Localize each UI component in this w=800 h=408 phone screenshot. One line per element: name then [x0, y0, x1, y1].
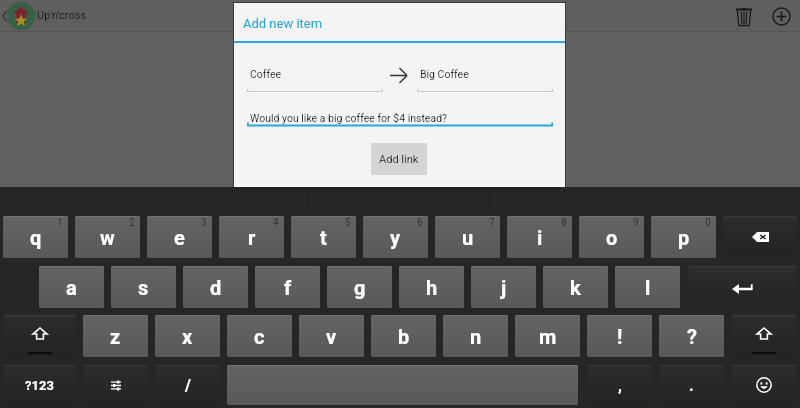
button[interactable]: j	[471, 266, 536, 308]
button[interactable]: Emoji	[731, 365, 797, 405]
button[interactable]: t	[291, 216, 356, 258]
staticText: 9	[633, 217, 639, 229]
staticText: ,	[618, 376, 622, 395]
staticText: 8	[561, 217, 567, 229]
button[interactable]: Space	[227, 365, 578, 405]
staticText: Big Coffee	[420, 68, 469, 80]
button[interactable]: Backspace	[723, 216, 797, 258]
other: Navigate up	[2, 11, 7, 21]
staticText: y	[390, 226, 401, 249]
staticText: u	[462, 226, 474, 249]
button[interactable]: i	[507, 216, 572, 258]
button[interactable]: a	[39, 266, 104, 308]
button[interactable]: !	[587, 315, 652, 357]
button[interactable]: Navigate up	[0, 0, 90, 32]
button[interactable]: y	[363, 216, 428, 258]
button[interactable]: b	[371, 315, 436, 357]
staticText: 3	[201, 217, 207, 229]
button[interactable]: Shift	[3, 315, 76, 357]
staticText: v	[326, 325, 337, 348]
button[interactable]: p	[651, 216, 716, 258]
staticText: ?	[687, 325, 697, 348]
staticText: 5	[345, 217, 351, 229]
button[interactable]: n	[443, 315, 508, 357]
staticText: t	[320, 226, 327, 249]
staticText: b	[398, 325, 410, 348]
staticText: h	[426, 276, 438, 299]
staticText: s	[138, 276, 149, 299]
staticText: !	[617, 325, 623, 348]
button[interactable]: z	[83, 315, 148, 357]
button[interactable]: m	[515, 315, 580, 357]
staticText: .	[689, 376, 694, 395]
staticText: m	[539, 325, 557, 348]
button[interactable]: s	[111, 266, 176, 308]
staticText: k	[570, 276, 581, 299]
staticText: 6	[417, 217, 423, 229]
staticText: e	[174, 226, 185, 249]
staticText: f	[284, 276, 292, 299]
button[interactable]: o	[579, 216, 644, 258]
staticText: ?123	[25, 378, 54, 393]
button[interactable]: f	[255, 266, 320, 308]
staticText: o	[606, 226, 618, 249]
staticText: i	[537, 226, 543, 249]
button[interactable]: c	[227, 315, 292, 357]
button[interactable]: ?123	[3, 365, 76, 405]
staticText: Up'n'cross	[37, 9, 87, 22]
staticText: Add link	[379, 153, 419, 166]
button[interactable]: w	[75, 216, 140, 258]
button[interactable]: e	[147, 216, 212, 258]
staticText: 1	[57, 217, 63, 229]
button[interactable]: /	[155, 365, 220, 405]
staticText: 2	[129, 217, 135, 229]
staticText: 0	[705, 217, 711, 229]
button[interactable]: Delete	[723, 0, 762, 32]
button[interactable]: g	[327, 266, 392, 308]
button[interactable]: h	[399, 266, 464, 308]
button[interactable]: u	[435, 216, 500, 258]
button[interactable]: Add	[762, 0, 800, 32]
staticText: 4	[273, 217, 279, 229]
button[interactable]: .	[659, 365, 724, 405]
button[interactable]: ?	[659, 315, 724, 357]
button[interactable]: x	[155, 315, 220, 357]
staticText: n	[470, 325, 482, 348]
staticText: q	[30, 226, 42, 249]
staticText: x	[182, 325, 193, 348]
staticText: Add new item	[243, 16, 323, 31]
staticText: a	[66, 276, 77, 299]
staticText: w	[100, 226, 115, 249]
button[interactable]: q	[3, 216, 68, 258]
button[interactable]: l	[615, 266, 680, 308]
staticText: 7	[489, 217, 495, 229]
button[interactable]: ,	[587, 365, 652, 405]
button[interactable]: d	[183, 266, 248, 308]
button[interactable]: Settings	[83, 365, 148, 405]
button[interactable]: r	[219, 216, 284, 258]
button[interactable]: Enter	[688, 266, 797, 308]
staticText: z	[110, 325, 121, 348]
staticText: /	[185, 376, 191, 395]
staticText: p	[678, 226, 690, 249]
staticText: Coffee	[250, 68, 282, 80]
button[interactable]: v	[299, 315, 364, 357]
staticText: g	[354, 276, 366, 299]
staticText: j	[501, 276, 507, 299]
staticText: c	[254, 325, 265, 348]
button[interactable]: Add link	[371, 143, 427, 175]
staticText: Would you like a big coffee for $4 inste…	[250, 112, 448, 124]
staticText: d	[210, 276, 222, 299]
staticText: r	[248, 226, 256, 249]
button[interactable]: k	[543, 266, 608, 308]
button[interactable]: Shift	[731, 315, 797, 357]
staticText: l	[645, 276, 651, 299]
